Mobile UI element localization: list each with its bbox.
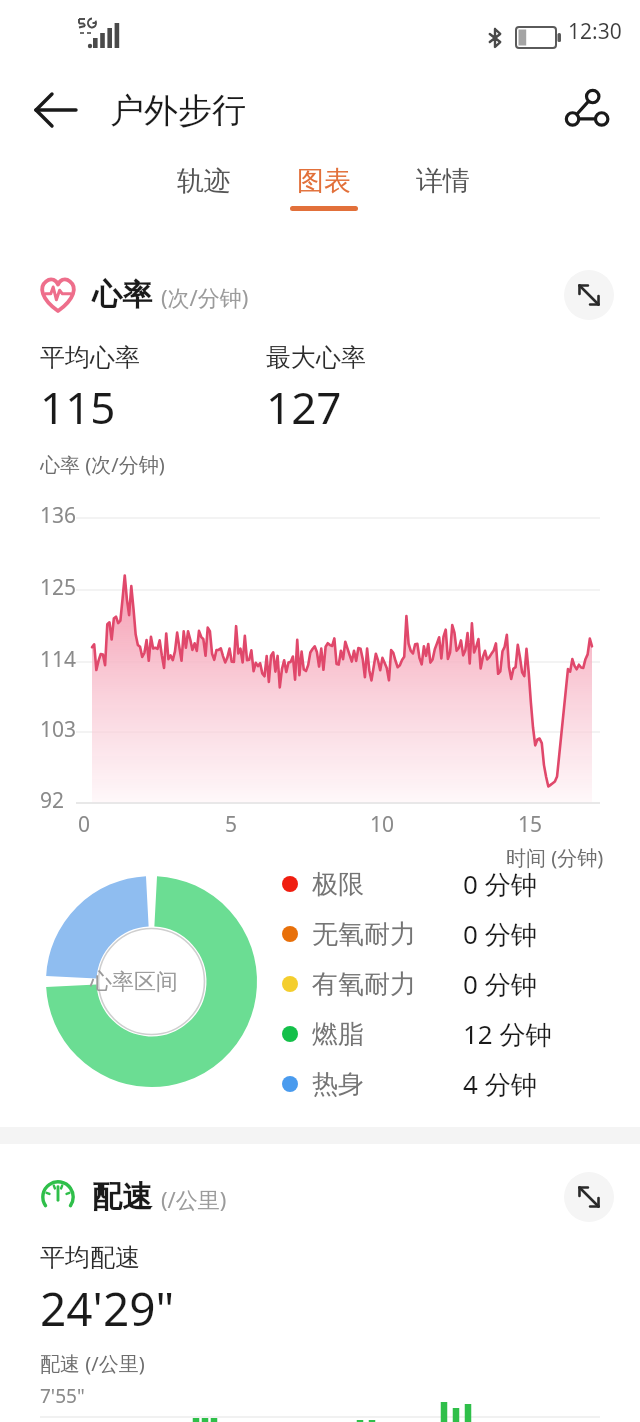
button[interactable]: 燃脂: [282, 1010, 640, 1058]
staticText: 轨迹: [177, 164, 231, 198]
staticText: 12:30: [568, 17, 622, 46]
staticText: 7'55": [40, 1383, 85, 1409]
staticText: 24'29": [40, 1277, 175, 1340]
button[interactable]: Expand chart: [564, 270, 614, 320]
staticText: 极限: [312, 868, 364, 901]
staticText: 0: [78, 810, 91, 839]
staticText: 136: [40, 501, 77, 530]
staticText: 10: [370, 810, 395, 839]
staticText: 平均心率: [40, 342, 140, 373]
staticText: 0 分钟: [463, 866, 537, 902]
staticText: 户外步行: [110, 89, 246, 132]
button[interactable]: 图表: [266, 164, 382, 230]
staticText: 有氧耐力: [312, 968, 416, 1001]
staticText: 图表: [297, 164, 351, 198]
button[interactable]: 有氧耐力: [282, 960, 640, 1008]
button[interactable]: Expand chart: [564, 1172, 614, 1222]
staticText: 125: [40, 573, 77, 602]
staticText: 燃脂: [312, 1018, 364, 1051]
staticText: 15: [518, 810, 543, 839]
staticText: 心率区间: [90, 968, 178, 996]
staticText: (次/分钟): [161, 282, 249, 312]
button[interactable]: 详情: [385, 164, 501, 230]
staticText: 103: [40, 715, 77, 744]
button[interactable]: 无氧耐力: [282, 910, 640, 958]
staticText: 详情: [416, 164, 470, 198]
staticText: 92: [40, 786, 65, 815]
button[interactable]: 热身: [282, 1060, 640, 1108]
staticText: 热身: [312, 1068, 364, 1101]
button[interactable]: 极限: [282, 860, 640, 908]
staticText: 配速 (/公里): [40, 1350, 145, 1377]
staticText: 心率: [92, 276, 152, 314]
staticText: 12 分钟: [463, 1016, 552, 1052]
staticText: (/公里): [161, 1184, 227, 1214]
staticText: 无氧耐力: [312, 918, 416, 951]
staticText: 最大心率: [266, 342, 366, 373]
staticText: 时间 (分钟): [506, 844, 604, 871]
staticText: 0 分钟: [463, 916, 537, 952]
staticText: 114: [40, 645, 77, 674]
staticText: 127: [266, 377, 342, 437]
staticText: 115: [40, 377, 116, 437]
staticText: 心率 (次/分钟): [40, 451, 165, 478]
button[interactable]: 轨迹: [146, 164, 262, 230]
staticText: 平均配速: [40, 1242, 140, 1273]
staticText: 0 分钟: [463, 966, 537, 1002]
staticText: 配速: [92, 1178, 152, 1216]
staticText: 5: [225, 810, 238, 839]
button[interactable]: Back: [30, 84, 82, 136]
staticText: 4 分钟: [463, 1066, 537, 1102]
button[interactable]: Share: [558, 82, 614, 138]
